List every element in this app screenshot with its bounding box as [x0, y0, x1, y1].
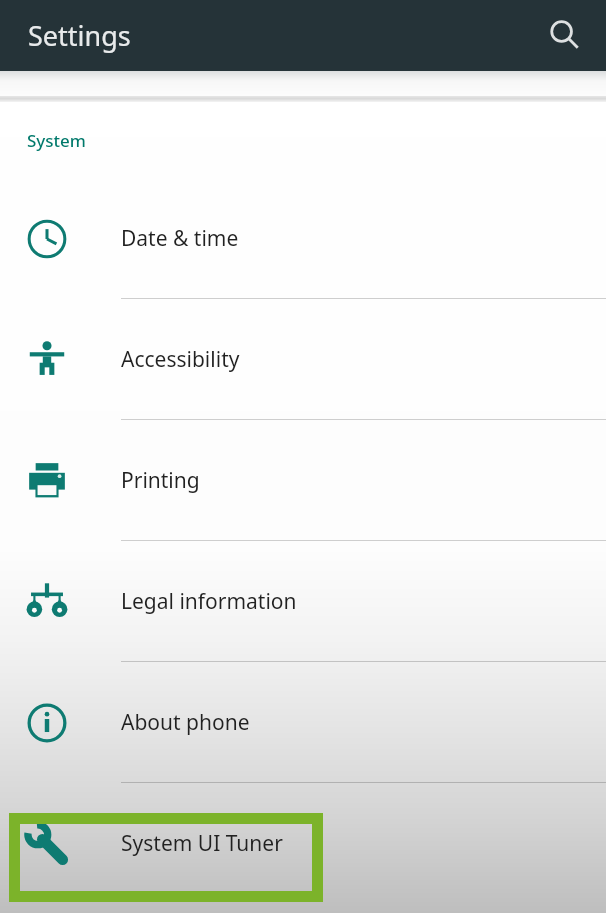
staticText: About phone: [121, 708, 250, 737]
staticText: Legal information: [121, 587, 297, 616]
button[interactable]: Search: [538, 9, 592, 63]
staticText: Printing: [121, 466, 200, 495]
staticText: Settings: [28, 17, 131, 54]
button[interactable]: Legal information: [0, 541, 606, 662]
button[interactable]: Accessibility: [0, 299, 606, 420]
staticText: System UI Tuner: [121, 829, 283, 858]
button[interactable]: About phone: [0, 662, 606, 783]
staticText: Accessibility: [121, 345, 240, 374]
button[interactable]: Date & time: [0, 178, 606, 299]
staticText: System: [27, 129, 86, 152]
staticText: Date & time: [121, 224, 239, 253]
button[interactable]: System UI Tuner: [0, 783, 606, 904]
button[interactable]: Printing: [0, 420, 606, 541]
